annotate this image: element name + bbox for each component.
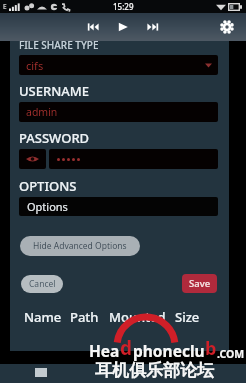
staticText: Mounted [109, 308, 166, 326]
staticText: b [205, 336, 217, 361]
staticText: Size [175, 308, 200, 326]
staticText: E [3, 2, 7, 11]
staticText: cifs [26, 58, 44, 73]
staticText: USERNAME [19, 82, 89, 100]
staticText: Cancel [29, 278, 56, 290]
staticText: Name [24, 308, 62, 326]
staticText: Options [27, 199, 68, 214]
button[interactable]: cifs [19, 55, 218, 75]
staticText: Save [189, 277, 211, 290]
button[interactable]: Options [19, 197, 218, 216]
staticText: Hide Advanced Options [33, 240, 127, 252]
button[interactable]: Next track [142, 17, 162, 37]
button[interactable]: Hide Advanced Options [20, 236, 140, 256]
button[interactable]: Settings [217, 17, 237, 37]
staticText: d [120, 335, 133, 361]
staticText: 15:29 [113, 1, 134, 12]
staticText: phoneclu [133, 340, 205, 361]
button[interactable]: Show password [19, 149, 46, 169]
staticText: OPTIONS [19, 177, 77, 195]
staticText: .COM [217, 347, 245, 361]
staticText: Path [70, 308, 99, 326]
staticText: Hea [89, 340, 120, 361]
button[interactable]: Previous track [84, 17, 104, 37]
staticText: FILE SHARE TYPE [19, 38, 99, 52]
button[interactable]: Cancel [21, 275, 63, 293]
button[interactable]: admin [19, 102, 218, 122]
button[interactable] [49, 149, 218, 169]
staticText: 耳机俱乐部论坛 [95, 360, 214, 381]
staticText: admin [26, 105, 58, 119]
button[interactable]: Play [113, 17, 133, 37]
button[interactable]: Save [182, 274, 217, 293]
staticText: PASSWORD [19, 129, 90, 147]
